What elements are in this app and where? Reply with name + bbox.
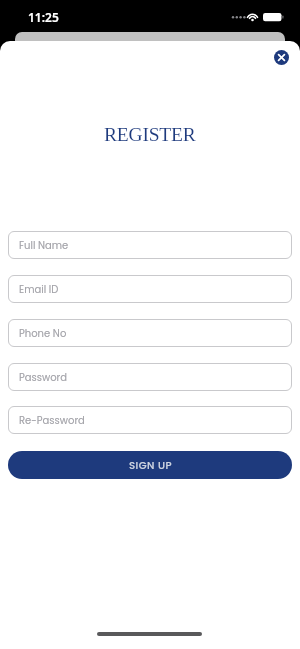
staticText: Phone No: [19, 326, 67, 340]
staticText: SIGN UP: [129, 458, 172, 472]
staticText: REGISTER: [104, 124, 196, 146]
staticText: Email ID: [19, 282, 59, 296]
staticText: 11:25: [28, 9, 59, 25]
button[interactable]: Email ID: [8, 275, 292, 303]
button[interactable]: Password: [8, 363, 292, 391]
staticText: Password: [19, 370, 68, 384]
button[interactable]: SIGN UP: [8, 451, 292, 479]
button[interactable]: Full Name: [8, 231, 292, 259]
button[interactable]: Re-Password: [8, 406, 292, 434]
button[interactable]: [274, 50, 289, 65]
staticText: Re-Password: [19, 413, 85, 427]
button[interactable]: Phone No: [8, 319, 292, 347]
staticText: Full Name: [19, 238, 69, 252]
